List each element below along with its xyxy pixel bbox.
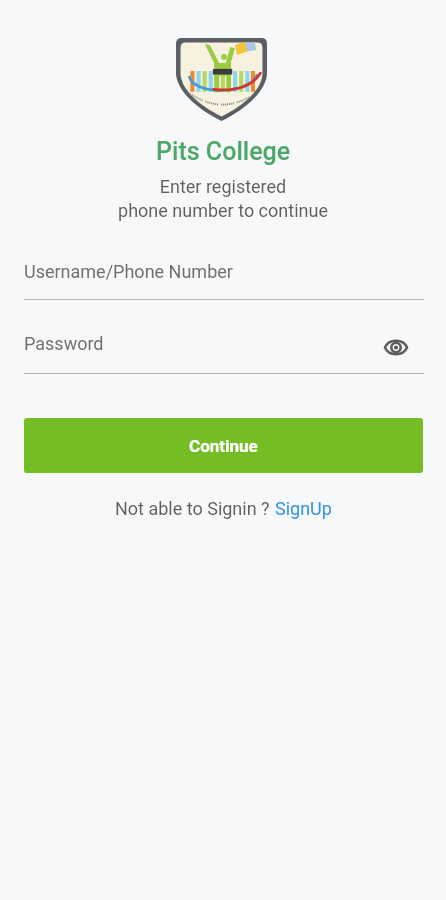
staticText: Enter registered phone number to continu… [118,176,328,221]
staticText: SignUp [275,498,332,519]
staticText: Pits College [156,137,291,166]
button[interactable]: Password [24,326,424,374]
staticText: Not able to Signin ? [115,498,275,519]
button[interactable]: Show password [378,329,414,365]
button[interactable]: Continue [24,418,423,473]
button[interactable]: Username/Phone Number [24,252,424,300]
staticText: Password [24,333,104,354]
staticText: Username/Phone Number [24,261,233,282]
staticText: Continue [189,436,258,456]
button[interactable]: SignUp [275,498,332,519]
